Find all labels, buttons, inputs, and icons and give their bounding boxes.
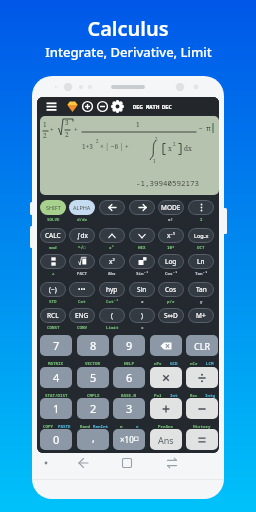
- staticText: -1,39940592173: [136, 178, 199, 188]
- staticText: PreAns: [158, 424, 174, 430]
- button[interactable]: [129, 254, 155, 269]
- staticText: Integrate, Derivative, Limit: [45, 43, 212, 61]
- button[interactable]: MODE: [158, 200, 184, 215]
- staticText: Ans: [158, 434, 174, 446]
- button[interactable]: S⇔D: [158, 308, 184, 323]
- staticText: Tan: [196, 285, 207, 294]
- staticText: 1: [136, 120, 140, 129]
- button[interactable]: Logₐx: [188, 228, 214, 243]
- button[interactable]: ∫dx: [69, 228, 95, 243]
- button[interactable]: SHIFT: [40, 200, 66, 215]
- staticText: MATH: [146, 103, 160, 110]
- button[interactable]: Zoom in: [80, 99, 95, 114]
- button[interactable]: [188, 200, 214, 215]
- button[interactable]: 9: [113, 335, 145, 356]
- staticText: LCM: [206, 361, 214, 367]
- button[interactable]: Cos: [158, 282, 184, 297]
- button[interactable]: ALPHA: [69, 200, 95, 215]
- staticText: Cos⁻¹: [165, 271, 178, 277]
- staticText: 1: [43, 120, 47, 129]
- button[interactable]: Ans: [150, 429, 182, 450]
- staticText: y: [200, 299, 203, 305]
- button[interactable]: Sin: [129, 282, 155, 297]
- button[interactable]: ×10: [113, 429, 145, 450]
- button[interactable]: x⁻¹: [158, 228, 184, 243]
- staticText: HELP: [124, 361, 135, 367]
- button[interactable]: 6: [113, 367, 145, 388]
- staticText: × | −6 | +: [100, 142, 129, 151]
- staticText: 1: [53, 401, 60, 416]
- staticText: 2: [96, 138, 99, 144]
- button[interactable]: ENG: [69, 308, 95, 323]
- button[interactable]: 8: [77, 335, 109, 356]
- button[interactable]: Tan: [188, 282, 214, 297]
- staticText: d/dx: [77, 217, 88, 223]
- button[interactable]: 4: [40, 367, 72, 388]
- staticText: nPr: [154, 361, 162, 367]
- button[interactable]: Ln: [188, 254, 214, 269]
- button[interactable]: 0: [40, 429, 72, 450]
- staticText: STAT/DIST: [45, 393, 68, 399]
- staticText: History: [193, 424, 211, 430]
- staticText: SHIFT: [46, 204, 61, 211]
- button[interactable]: Menu: [44, 99, 59, 114]
- button[interactable]: Premium: [65, 99, 80, 114]
- staticText: e: [136, 424, 139, 430]
- staticText: 0: [53, 432, 60, 447]
- staticText: RCL: [47, 311, 59, 320]
- staticText: Pol: [154, 393, 162, 399]
- staticText: π: [206, 123, 211, 133]
- button[interactable]: [99, 228, 125, 243]
- button[interactable]: [150, 335, 182, 356]
- button[interactable]: 3: [113, 398, 145, 419]
- button[interactable]: [150, 398, 182, 419]
- button[interactable]: 1: [40, 398, 72, 419]
- staticText: 7: [53, 338, 60, 353]
- staticText: Cot: [78, 299, 86, 305]
- button[interactable]: ,: [77, 429, 109, 450]
- staticText: 2: [43, 131, 47, 140]
- button[interactable]: [129, 200, 155, 215]
- button[interactable]: [99, 200, 125, 215]
- button[interactable]: [150, 367, 182, 388]
- button[interactable]: [129, 228, 155, 243]
- button[interactable]: M+: [188, 308, 214, 323]
- staticText: ALPHA: [73, 204, 91, 211]
- staticText: ): [141, 311, 143, 320]
- staticText: ,: [92, 431, 95, 445]
- staticText: x²: [109, 257, 115, 266]
- staticText: CALC: [45, 231, 61, 240]
- button[interactable]: CLR: [186, 335, 218, 356]
- button[interactable]: x²: [99, 254, 125, 269]
- staticText: Int: [170, 393, 178, 399]
- button[interactable]: Log: [158, 254, 184, 269]
- button[interactable]: [40, 254, 66, 269]
- button[interactable]: CALC: [40, 228, 66, 243]
- staticText: +: [74, 125, 78, 134]
- staticText: 3: [65, 118, 69, 127]
- staticText: dx: [184, 144, 192, 153]
- staticText: DEC: [162, 103, 172, 110]
- button[interactable]: (: [99, 308, 125, 323]
- staticText: 8: [90, 338, 97, 353]
- button[interactable]: RCL: [40, 308, 66, 323]
- button[interactable]: [69, 254, 95, 269]
- button[interactable]: •••: [69, 282, 95, 297]
- button[interactable]: 5: [77, 367, 109, 388]
- button[interactable]: Zoom out: [95, 99, 110, 114]
- button[interactable]: (−): [40, 282, 66, 297]
- staticText: ⁿ√□: [78, 245, 86, 251]
- button[interactable]: [186, 367, 218, 388]
- staticText: S⇔D: [164, 311, 178, 320]
- staticText: 1: [153, 158, 156, 164]
- button[interactable]: ): [129, 308, 155, 323]
- staticText: Limit: [106, 325, 119, 331]
- staticText: HEX: [138, 245, 146, 251]
- button[interactable]: hyp: [99, 282, 125, 297]
- button[interactable]: Settings: [110, 99, 125, 114]
- staticText: Logₐx: [194, 232, 209, 239]
- button[interactable]: [186, 429, 218, 450]
- button[interactable]: 2: [77, 398, 109, 419]
- button[interactable]: 7: [40, 335, 72, 356]
- button[interactable]: [186, 398, 218, 419]
